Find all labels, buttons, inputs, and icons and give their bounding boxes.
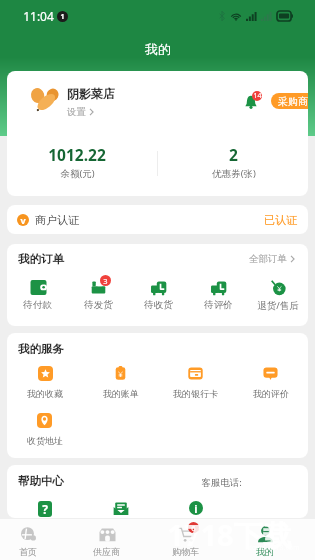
staticText: 全部订单 xyxy=(249,253,287,265)
staticText: 待收货 xyxy=(144,299,173,311)
staticText: 6 xyxy=(191,523,196,533)
staticText: 优惠券(张) xyxy=(212,167,256,180)
button[interactable]: 意见反馈 xyxy=(83,501,158,518)
button[interactable]: 待收货 xyxy=(128,279,188,321)
button[interactable]: Notifications xyxy=(244,91,269,109)
button[interactable]: 供应商 xyxy=(67,519,146,557)
staticText: 待发货 xyxy=(84,299,113,311)
staticText: 购物车 xyxy=(172,546,199,557)
button[interactable]: 我的收藏 xyxy=(7,366,83,406)
staticText: 供应商 xyxy=(93,546,120,557)
button[interactable]: 全部订单 xyxy=(249,253,295,265)
staticText: i xyxy=(194,501,198,515)
staticText: 我的 xyxy=(145,41,171,57)
staticText: 待付款 xyxy=(23,299,52,311)
button[interactable]: 我的账单 xyxy=(83,366,158,406)
staticText: 我的银行卡 xyxy=(173,388,218,399)
button[interactable]: 采购商 xyxy=(271,93,308,109)
staticText: 1012.22 xyxy=(48,144,106,165)
staticText: 设置 xyxy=(67,106,86,118)
staticText: 余额(元) xyxy=(60,167,95,180)
button[interactable]: 首页 xyxy=(0,519,67,557)
button[interactable]: 待评价 xyxy=(188,279,248,321)
staticText: 我的账单 xyxy=(103,388,139,399)
staticText: 采购商 xyxy=(278,95,308,108)
button[interactable]: 待付款 xyxy=(7,279,68,321)
button[interactable]: 收货地址 xyxy=(7,413,82,453)
staticText: 我的订单 xyxy=(18,252,64,266)
button[interactable]: 常见问题 xyxy=(7,501,83,518)
button[interactable]: 3 xyxy=(68,279,128,321)
staticText: 3 xyxy=(103,276,108,286)
staticText: 我的 xyxy=(256,546,274,557)
button[interactable]: 我的 xyxy=(225,519,304,557)
staticText: 阴影菜店 xyxy=(67,86,115,101)
staticText: 收货地址 xyxy=(27,435,63,446)
staticText: 已认证 xyxy=(264,213,297,227)
staticText: 帮助中心 xyxy=(18,474,64,488)
button[interactable]: 2 xyxy=(185,144,282,180)
staticText: 首页 xyxy=(19,546,37,557)
button[interactable]: 我的银行卡 xyxy=(158,366,233,406)
staticText: ? xyxy=(42,501,48,517)
staticText: down.1718.com xyxy=(247,543,300,553)
button[interactable]: v xyxy=(17,205,297,234)
staticText: 1718下载 xyxy=(167,515,292,555)
staticText: 我的服务 xyxy=(18,342,64,356)
button[interactable]: 关于我们 xyxy=(158,501,233,518)
staticText: 我的收藏 xyxy=(27,388,63,399)
staticText: 11:04 xyxy=(23,8,54,24)
staticText: 商户认证 xyxy=(35,213,79,227)
staticText: 1 xyxy=(60,12,65,22)
button[interactable]: 设置 xyxy=(67,106,94,118)
staticText: 我的评价 xyxy=(253,388,289,399)
staticText: 客服电话: xyxy=(201,476,242,489)
button[interactable]: 我的评价 xyxy=(233,366,308,406)
button[interactable]: 1012.22 xyxy=(29,144,125,180)
button[interactable]: 退货/售后 xyxy=(248,279,308,321)
button[interactable]: 6 xyxy=(146,519,225,557)
staticText: 退货/售后 xyxy=(257,299,299,312)
staticText: 2 xyxy=(229,144,238,165)
staticText: v xyxy=(20,214,26,226)
staticText: 待评价 xyxy=(204,299,233,311)
staticText: 14 xyxy=(253,91,262,101)
